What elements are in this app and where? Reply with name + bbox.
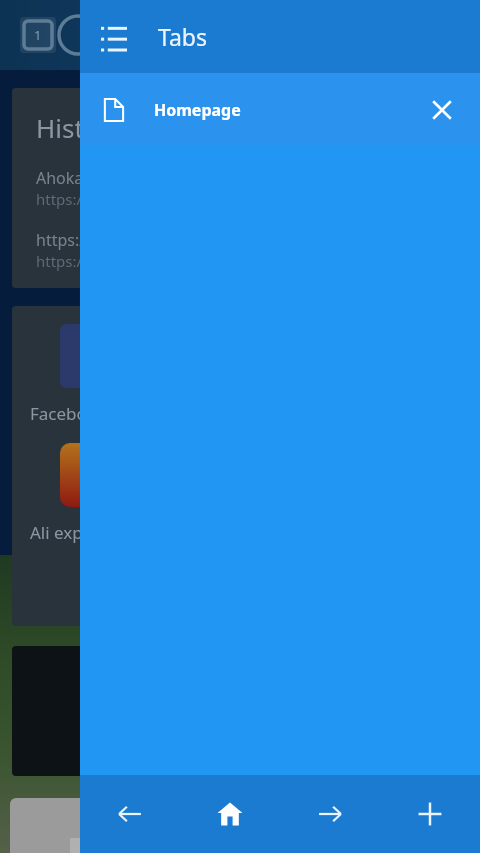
staticText: Ali express (30, 521, 116, 544)
button[interactable]: Home (180, 775, 280, 853)
staticText: History (36, 110, 124, 145)
staticText: Ahoka daily news (36, 167, 166, 189)
staticText: https://example.com/a (36, 189, 197, 209)
staticText: Facebook (30, 402, 107, 425)
button[interactable]: Back (80, 775, 180, 853)
staticText: https://example.com/c (36, 251, 195, 271)
button[interactable]: Tab list (92, 15, 136, 59)
button[interactable]: Forward (280, 775, 380, 853)
button[interactable]: Homepage (80, 73, 480, 146)
button[interactable]: Tab list (80, 0, 480, 73)
button[interactable]: New tab (380, 775, 480, 853)
staticText: Homepage (154, 99, 422, 121)
staticText: https://example.com/b (36, 229, 208, 251)
button[interactable]: Close tab (422, 90, 462, 130)
staticText: 1 (34, 26, 42, 44)
staticText: Tabs (158, 21, 208, 52)
